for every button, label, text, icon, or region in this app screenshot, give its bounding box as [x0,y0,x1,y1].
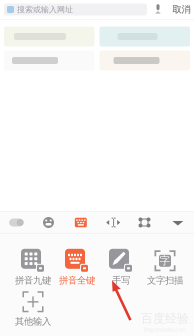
button[interactable]: Voice search [147,3,169,16]
button[interactable]: Input toggle [0,216,32,228]
staticText: 拼音九键 [15,275,51,286]
button[interactable]: 拼音全键 [55,247,99,288]
button[interactable]: 手写 [99,247,143,288]
button[interactable]: 其他输入 [11,288,55,329]
staticText: 文字扫描 [147,275,183,286]
staticText: 其他输入 [15,316,51,327]
staticText: 搜索或输入网址 [17,5,73,14]
staticText: 百度经验 [141,311,189,326]
staticText: jingyan.baidu.com [143,326,186,333]
button[interactable]: Emoji [32,216,65,228]
staticText: 取消 [172,4,190,15]
button[interactable]: 取消 [169,3,194,16]
button[interactable]: Move cursor [97,216,129,228]
staticText: 字 [159,254,170,267]
staticText: 手写 [112,275,130,286]
button[interactable]: 字 [143,247,187,288]
button[interactable]: Settings [129,216,162,228]
button[interactable]: 拼音九键 [11,247,55,288]
button[interactable]: Keyboard [65,216,97,228]
button[interactable]: Hide keyboard [162,216,194,228]
staticText: 拼音全键 [59,275,95,286]
